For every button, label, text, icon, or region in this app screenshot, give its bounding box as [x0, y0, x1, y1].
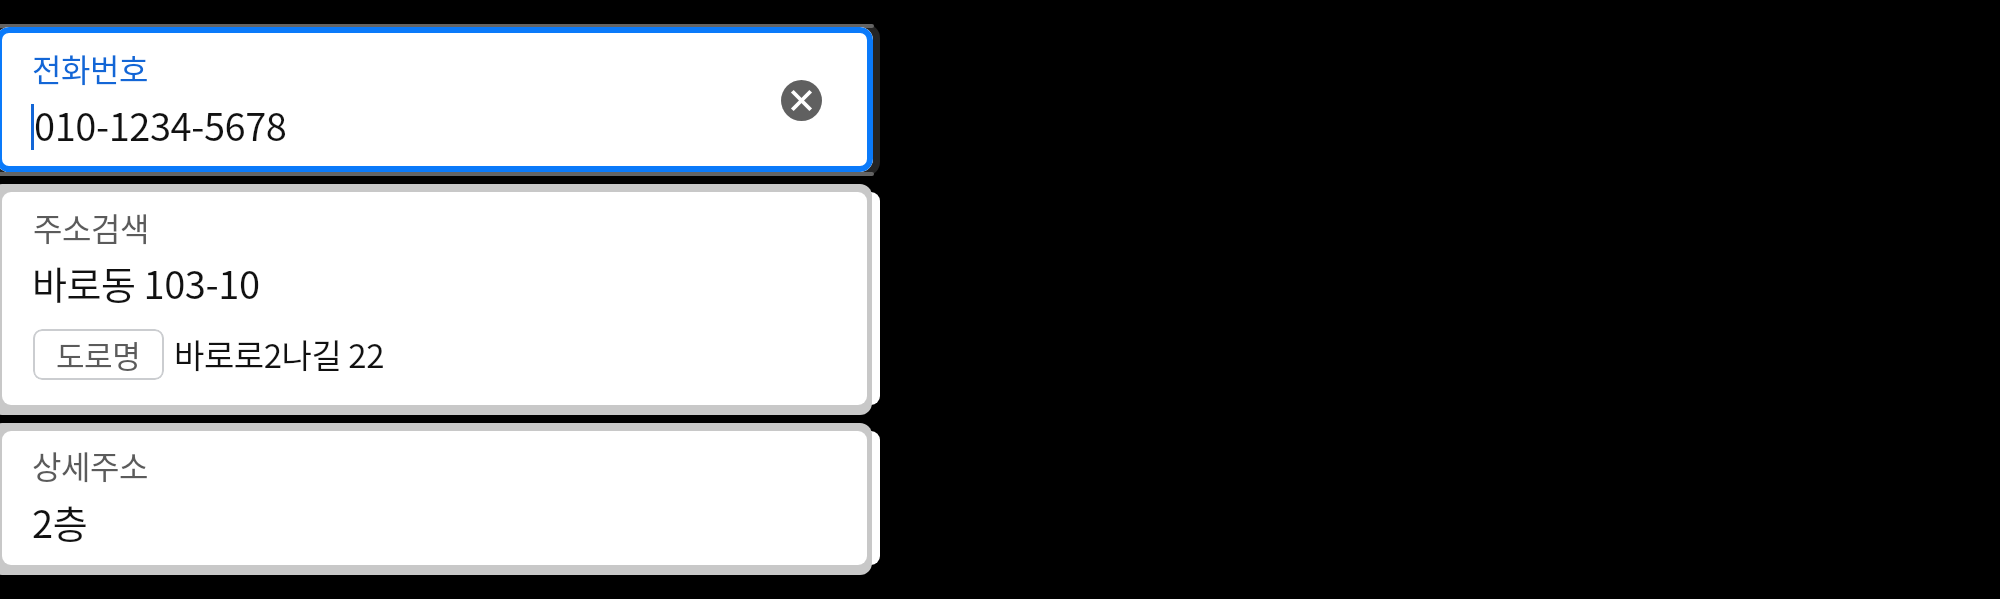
- staticText: 전화번호: [32, 45, 148, 91]
- staticText: 바로동 103-10: [32, 255, 260, 310]
- staticText: 010-1234-5678: [34, 97, 287, 152]
- staticText: 상세주소: [32, 442, 148, 488]
- button[interactable]: 전화번호: [0, 27, 873, 172]
- staticText: 2층: [32, 494, 88, 549]
- button[interactable]: 상세주소: [2, 431, 867, 565]
- button[interactable]: Clear text: [781, 80, 822, 121]
- staticText: 바로로2나길 22: [174, 330, 385, 378]
- staticText: 도로명: [56, 332, 141, 377]
- button[interactable]: 도로명: [33, 329, 164, 380]
- staticText: 주소검색: [33, 204, 149, 250]
- button[interactable]: 주소검색: [2, 192, 867, 405]
